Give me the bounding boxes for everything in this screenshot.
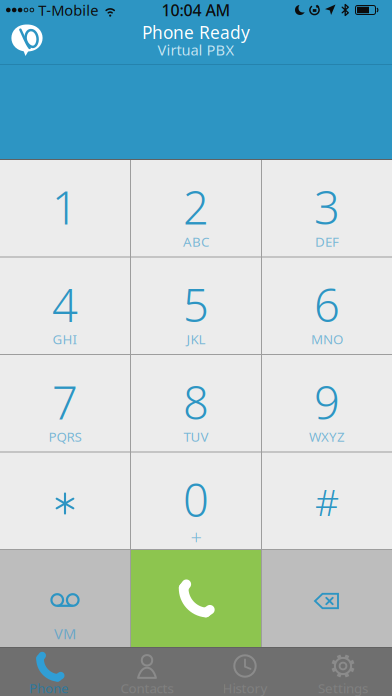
staticText: 7	[52, 372, 78, 432]
button[interactable]: 8	[131, 355, 261, 451]
staticText: JKL	[186, 330, 205, 348]
staticText: TUV	[183, 428, 208, 445]
button[interactable]: Call	[131, 550, 261, 647]
staticText: T-Mobile	[38, 0, 98, 20]
staticText: ABC	[183, 233, 209, 250]
staticText: #	[315, 477, 339, 526]
button[interactable]: Phone	[0, 647, 98, 696]
staticText: 1	[52, 177, 78, 237]
button[interactable]: 4	[0, 257, 130, 354]
staticText: Contacts	[120, 679, 173, 696]
staticText: History	[222, 679, 267, 696]
button[interactable]: 1	[0, 160, 130, 256]
button[interactable]: 2	[131, 160, 261, 256]
button[interactable]: Voicemail	[0, 550, 130, 647]
button[interactable]: 7	[0, 355, 130, 451]
button[interactable]: 0	[131, 452, 261, 549]
staticText: GHI	[52, 330, 77, 348]
staticText: VM	[54, 624, 76, 643]
staticText: Virtual PBX	[157, 40, 234, 60]
staticText: Settings	[318, 679, 368, 696]
button[interactable]: Delete	[262, 550, 392, 647]
staticText: +	[190, 523, 201, 550]
staticText: 10:04 AM	[161, 0, 230, 21]
staticText: WXYZ	[309, 428, 345, 445]
button[interactable]: Star	[0, 452, 130, 549]
button[interactable]: 9	[262, 355, 392, 451]
button[interactable]: 3	[262, 160, 392, 256]
staticText: 8	[183, 372, 209, 432]
button[interactable]: History	[196, 647, 294, 696]
button[interactable]: 5	[131, 257, 261, 354]
button[interactable]: Pound	[262, 452, 392, 549]
staticText: 2	[183, 177, 209, 237]
staticText: PQRS	[48, 428, 81, 445]
staticText: Phone	[29, 679, 69, 696]
staticText: MNO	[311, 330, 343, 348]
staticText: 4	[52, 274, 78, 335]
staticText: 3	[314, 177, 340, 237]
staticText: 0	[183, 469, 209, 530]
staticText: DEF	[315, 233, 339, 250]
button[interactable]: 6	[262, 257, 392, 354]
staticText: 6	[314, 274, 340, 335]
staticText: 9	[314, 372, 340, 432]
button[interactable]: Contacts	[98, 647, 196, 696]
staticText: 5	[183, 274, 209, 335]
staticText: Phone Ready	[142, 21, 250, 44]
button[interactable]: Settings	[294, 647, 392, 696]
